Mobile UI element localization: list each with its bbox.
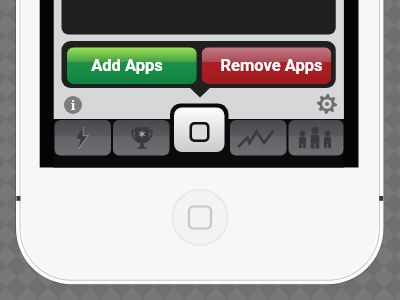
button[interactable]: Friends <box>288 120 345 156</box>
button[interactable]: Settings <box>317 94 337 114</box>
button[interactable]: Remove Apps <box>202 47 331 84</box>
button[interactable]: Info <box>64 96 82 114</box>
button[interactable]: Home button <box>171 189 229 247</box>
staticText: Add Apps <box>91 56 163 75</box>
button[interactable]: Home <box>170 103 229 156</box>
button[interactable]: Add Apps <box>67 47 197 84</box>
button[interactable]: Stats <box>230 120 287 156</box>
button[interactable]: Activity <box>54 120 111 156</box>
staticText: i <box>71 97 76 113</box>
staticText: Remove Apps <box>220 56 323 75</box>
button[interactable]: Awards <box>113 120 170 156</box>
